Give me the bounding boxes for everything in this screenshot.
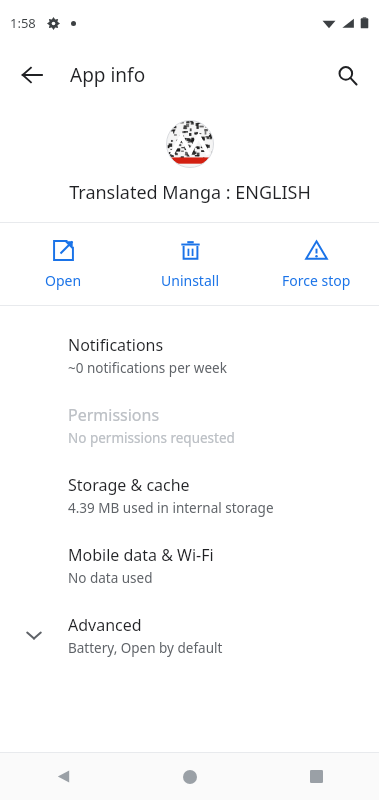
staticText: ~0 notifications per week: [68, 359, 227, 377]
staticText: 4.39 MB used in internal storage: [68, 499, 274, 517]
button[interactable]: Home: [127, 753, 253, 800]
button[interactable]: Permissions: [0, 390, 379, 460]
staticText: Battery, Open by default: [68, 639, 223, 657]
staticText: Permissions: [68, 404, 160, 426]
staticText: Notifications: [68, 334, 164, 356]
staticText: 1:58: [10, 14, 36, 32]
staticText: Uninstall: [161, 271, 219, 290]
button[interactable]: Storage & cache: [0, 460, 379, 530]
staticText: Mobile data & Wi-Fi: [68, 544, 214, 566]
button[interactable]: Notifications: [0, 320, 379, 390]
button[interactable]: Recent apps: [253, 753, 379, 800]
staticText: Open: [45, 271, 82, 290]
button[interactable]: Force stop: [253, 223, 379, 305]
staticText: App info: [70, 62, 146, 88]
staticText: No data used: [68, 569, 153, 587]
button[interactable]: Search: [323, 51, 371, 99]
button[interactable]: Back: [8, 51, 56, 99]
staticText: Advanced: [68, 614, 142, 636]
staticText: Storage & cache: [68, 474, 190, 496]
button[interactable]: Back: [0, 753, 127, 800]
staticText: Force stop: [282, 271, 351, 290]
button[interactable]: Uninstall: [127, 223, 253, 305]
button[interactable]: Open: [0, 223, 127, 305]
button[interactable]: Mobile data & Wi-Fi: [0, 530, 379, 600]
staticText: Translated Manga : ENGLISH: [69, 180, 311, 205]
button[interactable]: Advanced: [0, 600, 379, 670]
staticText: No permissions requested: [68, 429, 235, 447]
